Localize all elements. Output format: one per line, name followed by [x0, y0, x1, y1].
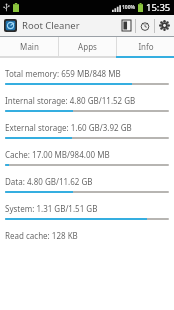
staticText: Data: 4.80 GB/11.62 GB	[5, 176, 93, 187]
button[interactable]: Main	[0, 37, 58, 56]
staticText: Read cache: 128 KB	[5, 230, 78, 241]
staticText: Info	[138, 41, 154, 52]
staticText: Cache: 17.00 MB/984.00 MB	[5, 149, 110, 160]
staticText: Main	[20, 41, 39, 52]
button[interactable]: Scheduler	[136, 15, 154, 36]
button[interactable]: Apps	[59, 37, 116, 56]
button[interactable]: Internal storage: 4.80 GB/11.52 GB	[0, 91, 174, 118]
button[interactable]: External storage: 1.60 GB/3.92 GB	[0, 118, 174, 145]
button[interactable]: Logs	[117, 15, 135, 36]
staticText: System: 1.31 GB/1.51 GB	[5, 203, 98, 214]
button[interactable]: System: 1.31 GB/1.51 GB	[0, 199, 174, 226]
staticText: Internal storage: 4.80 GB/11.52 GB	[5, 95, 136, 106]
staticText: Apps	[78, 41, 97, 52]
button[interactable]: Read cache: 128 KB	[0, 226, 174, 249]
staticText: External storage: 1.60 GB/3.92 GB	[5, 122, 132, 133]
button[interactable]: Total memory: 659 MB/848 MB	[0, 64, 174, 91]
button[interactable]: Data: 4.80 GB/11.62 GB	[0, 172, 174, 199]
staticText: 100%	[122, 4, 136, 11]
staticText: Total memory: 659 MB/848 MB	[5, 68, 121, 79]
button[interactable]: Settings	[155, 15, 174, 36]
button[interactable]: Cache: 17.00 MB/984.00 MB	[0, 145, 174, 172]
button[interactable]: Info	[117, 37, 174, 56]
staticText: 15:35	[146, 1, 171, 14]
staticText: Root Cleaner	[22, 19, 80, 32]
